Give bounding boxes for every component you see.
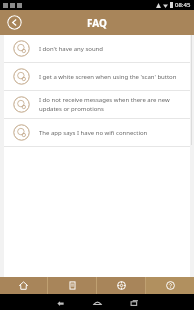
button[interactable]: I get a white screen when using the 'sca… — [4, 63, 190, 91]
button[interactable]: FAQ — [146, 277, 194, 294]
staticText: FAQ — [87, 16, 107, 30]
staticText: I do not receive messages when there are… — [39, 96, 181, 113]
staticText: The app says I have no wifi connection — [39, 129, 148, 137]
button[interactable]: Home — [0, 277, 47, 294]
button[interactable]: Card — [48, 277, 96, 294]
staticText: I don't have any sound — [39, 45, 104, 53]
button[interactable]: Back — [7, 15, 22, 30]
button[interactable]: Scan — [97, 277, 145, 294]
staticText: 08:45 — [175, 1, 191, 9]
button[interactable]: I don't have any sound — [4, 35, 190, 63]
button[interactable]: I do not receive messages when there are… — [4, 91, 190, 119]
button[interactable]: The app says I have no wifi connection — [4, 119, 190, 147]
staticText: I get a white screen when using the 'sca… — [39, 73, 177, 81]
